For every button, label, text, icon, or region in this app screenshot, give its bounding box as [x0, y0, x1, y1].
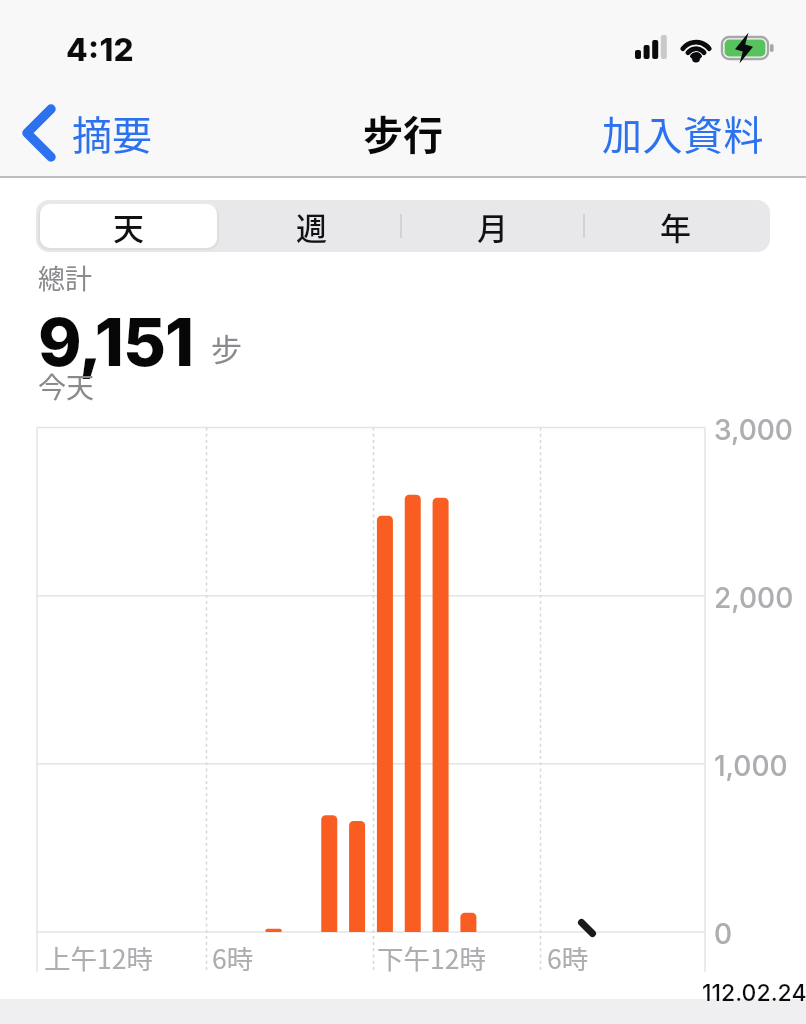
staticText: 9,151 — [38, 302, 194, 382]
button[interactable]: 摘要 — [20, 96, 152, 170]
staticText: 今天 — [38, 366, 95, 407]
staticText: 6時 — [547, 938, 589, 976]
staticText: 天 — [113, 204, 144, 248]
staticText: 上午12時 — [44, 938, 153, 976]
staticText: 加入資料 — [602, 104, 764, 162]
staticText: 步行 — [363, 104, 443, 162]
button[interactable]: 天 — [40, 204, 217, 248]
button[interactable]: 年 — [615, 200, 735, 252]
staticText: 112.02.24 — [702, 979, 806, 1007]
staticText: 步 — [211, 325, 242, 370]
staticText: 週 — [296, 204, 327, 249]
staticText: 0 — [714, 917, 733, 951]
staticText: 6時 — [212, 938, 254, 976]
staticText: 3,000 — [714, 413, 793, 447]
button[interactable]: 月 — [432, 200, 552, 252]
staticText: 年 — [660, 204, 691, 249]
button[interactable]: 加入資料 — [602, 96, 764, 170]
button[interactable]: 週 — [251, 200, 371, 252]
staticText: 摘要 — [72, 104, 152, 162]
staticText: 下午12時 — [377, 938, 486, 976]
staticText: 2,000 — [714, 581, 794, 615]
staticText: 4:12 — [66, 30, 134, 68]
staticText: 月 — [477, 204, 508, 249]
staticText: 1,000 — [714, 749, 788, 783]
staticText: 總計 — [38, 258, 92, 297]
